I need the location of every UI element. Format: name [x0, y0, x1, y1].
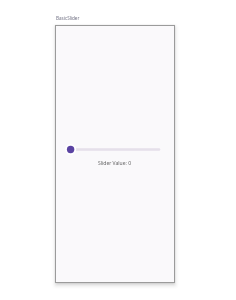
- button[interactable]: Slider: [60, 139, 165, 160]
- staticText: Slider Value: 0: [55, 160, 174, 167]
- staticText: BasicSlider: [56, 15, 80, 21]
